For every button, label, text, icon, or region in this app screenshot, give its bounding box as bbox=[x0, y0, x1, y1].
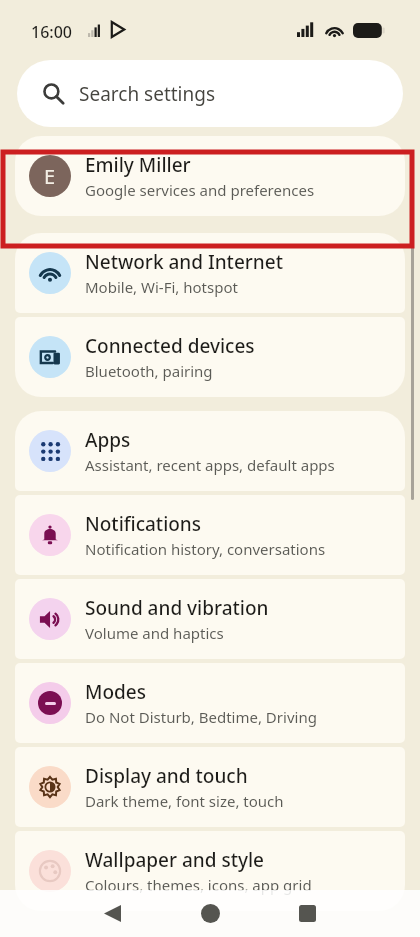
staticText: Do Not Disturb, Bedtime, Driving bbox=[85, 707, 317, 727]
button[interactable]: Wallpaper and style bbox=[15, 831, 405, 911]
button[interactable]: Modes bbox=[15, 663, 405, 743]
staticText: Bluetooth, pairing bbox=[85, 361, 213, 381]
button[interactable]: Back bbox=[88, 890, 136, 937]
staticText: Search settings bbox=[79, 81, 216, 107]
button[interactable]: E bbox=[15, 136, 405, 216]
staticText: Dark theme, font size, touch bbox=[85, 791, 284, 811]
staticText: Colours, themes, icons, app grid bbox=[85, 875, 312, 895]
button[interactable]: Home bbox=[186, 890, 234, 937]
staticText: Google services and preferences bbox=[85, 180, 315, 200]
button[interactable]: Apps bbox=[15, 411, 405, 491]
button[interactable]: Display and touch bbox=[15, 747, 405, 827]
staticText: E bbox=[44, 163, 56, 190]
button[interactable]: Search settings bbox=[17, 60, 403, 127]
button[interactable]: Recent apps bbox=[283, 890, 331, 937]
staticText: Apps bbox=[85, 427, 131, 453]
staticText: Wallpaper and style bbox=[85, 847, 265, 873]
button[interactable]: Network and Internet bbox=[15, 233, 405, 313]
staticText: 16:00 bbox=[31, 21, 72, 43]
staticText: Display and touch bbox=[85, 763, 248, 789]
staticText: Volume and haptics bbox=[85, 623, 224, 643]
button[interactable]: Notifications bbox=[15, 495, 405, 575]
staticText: Notification history, conversations bbox=[85, 539, 326, 559]
button[interactable]: Connected devices bbox=[15, 317, 405, 397]
staticText: Network and Internet bbox=[85, 249, 283, 275]
staticText: Sound and vibration bbox=[85, 595, 269, 621]
staticText: Connected devices bbox=[85, 333, 255, 359]
staticText: Notifications bbox=[85, 511, 202, 537]
staticText: Emily Miller bbox=[85, 152, 191, 178]
staticText: Assistant, recent apps, default apps bbox=[85, 455, 335, 475]
button[interactable]: Sound and vibration bbox=[15, 579, 405, 659]
staticText: Mobile, Wi-Fi, hotspot bbox=[85, 277, 238, 297]
staticText: Modes bbox=[85, 679, 146, 705]
